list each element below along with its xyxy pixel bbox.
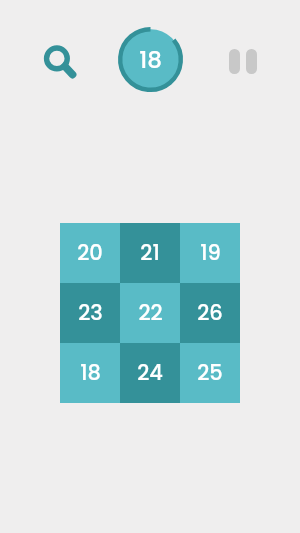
staticText: 24 [137,358,163,387]
button[interactable]: 19 [180,223,240,283]
button[interactable]: Search [40,40,80,80]
staticText: 26 [197,298,223,327]
staticText: 23 [78,298,103,327]
button[interactable]: 25 [180,343,240,403]
staticText: 20 [77,238,103,267]
button[interactable]: 18 [60,343,120,403]
staticText: 19 [200,238,221,267]
staticText: 21 [140,238,160,267]
button[interactable]: 18 [118,27,183,92]
button[interactable]: 20 [60,223,120,283]
staticText: 18 [139,44,162,76]
staticText: 22 [138,298,163,327]
button[interactable]: 21 [120,223,180,283]
button[interactable]: 23 [60,283,120,343]
staticText: 18 [80,358,101,387]
button[interactable]: 24 [120,343,180,403]
button[interactable]: Pause [226,44,262,78]
button[interactable]: 26 [180,283,240,343]
staticText: 25 [197,358,223,387]
button[interactable]: 22 [120,283,180,343]
